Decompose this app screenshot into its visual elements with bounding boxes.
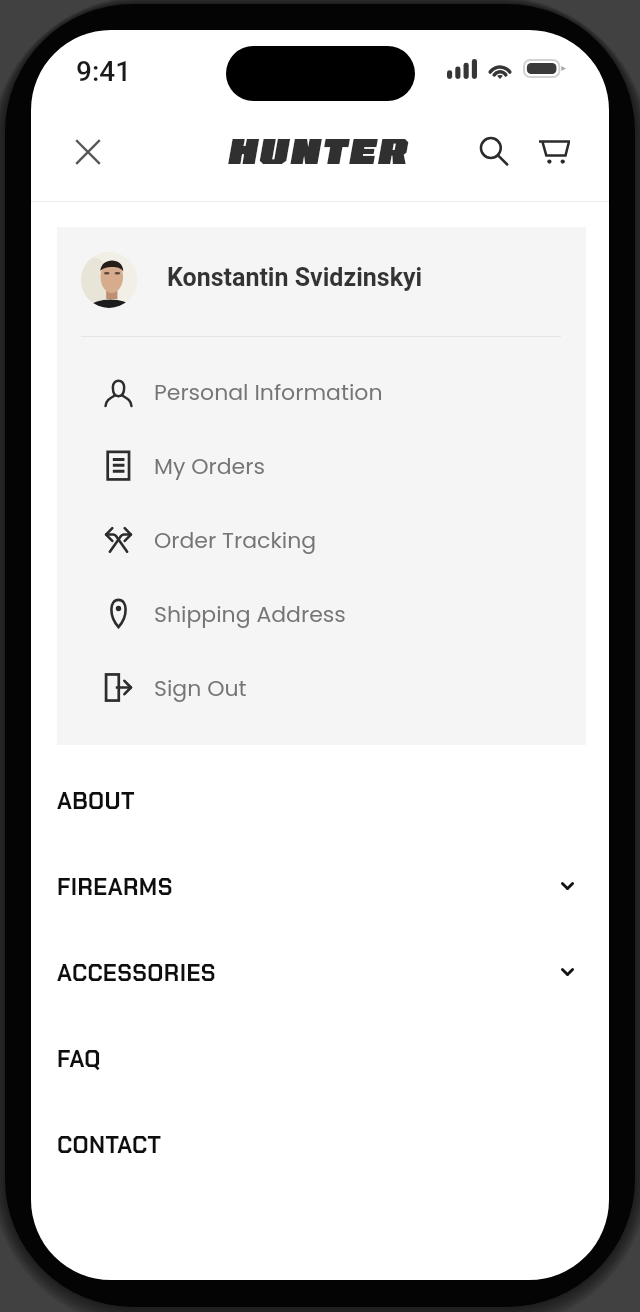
button[interactable]: FAQ <box>31 1027 609 1113</box>
button[interactable]: Search <box>474 131 514 171</box>
staticText: Order Tracking <box>154 525 317 556</box>
button[interactable]: Sign Out <box>57 650 586 724</box>
button[interactable]: Close <box>69 133 107 171</box>
staticText: 9:41 <box>76 55 132 88</box>
staticText: Sign Out <box>154 673 247 704</box>
button[interactable]: ACCESSORIES <box>31 941 609 1027</box>
button[interactable]: ABOUT <box>31 769 609 855</box>
staticText: ACCESSORIES <box>57 958 216 988</box>
staticText: Personal Information <box>154 377 383 408</box>
button[interactable]: Personal Information <box>57 354 586 428</box>
staticText: CONTACT <box>57 1130 162 1160</box>
staticText: My Orders <box>154 451 265 482</box>
staticText: FIREARMS <box>57 872 173 902</box>
staticText: Konstantin Svidzinskyi <box>167 263 423 292</box>
staticText: ABOUT <box>57 786 135 816</box>
staticText: FAQ <box>57 1044 101 1074</box>
button[interactable]: FIREARMS <box>31 855 609 941</box>
button[interactable]: Shipping Address <box>57 576 586 650</box>
button[interactable]: My Orders <box>57 428 586 502</box>
button[interactable]: Shopping cart <box>534 132 574 172</box>
staticText: Shipping Address <box>154 599 346 630</box>
button[interactable]: Order Tracking <box>57 502 586 576</box>
staticText: HUNTER <box>227 130 409 171</box>
button[interactable]: CONTACT <box>31 1113 609 1199</box>
